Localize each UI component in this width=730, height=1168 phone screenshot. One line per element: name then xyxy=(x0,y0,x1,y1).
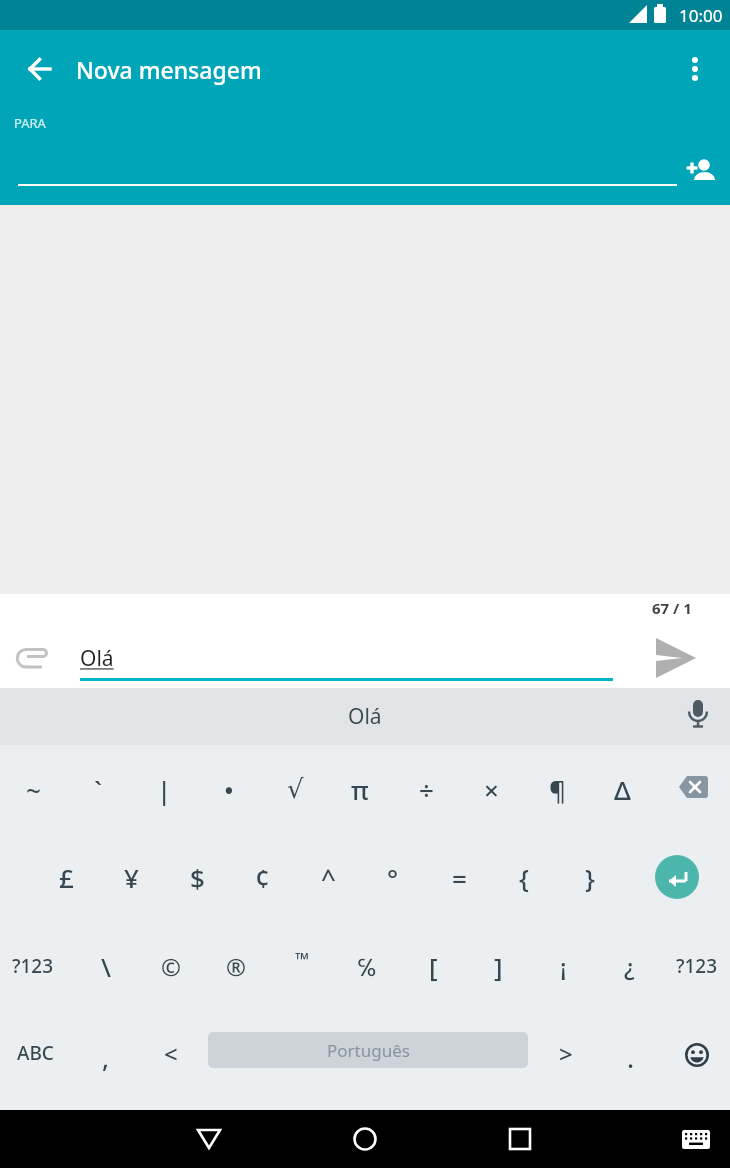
staticText: = xyxy=(452,860,467,895)
button[interactable] xyxy=(14,640,58,676)
button[interactable]: Δ xyxy=(590,748,654,830)
button[interactable] xyxy=(665,748,729,830)
button[interactable]: > xyxy=(534,1012,598,1094)
staticText: , xyxy=(102,1040,110,1075)
button[interactable]: © xyxy=(139,925,203,1007)
button[interactable] xyxy=(674,149,730,193)
button[interactable] xyxy=(16,45,64,93)
staticText: • xyxy=(224,772,234,807)
button[interactable] xyxy=(664,1012,728,1094)
button[interactable]: ÷ xyxy=(394,748,458,830)
staticText: ` xyxy=(94,772,102,807)
staticText: ℅ xyxy=(357,950,377,983)
button[interactable]: ?123 xyxy=(665,925,729,1007)
button[interactable] xyxy=(181,1111,237,1167)
button[interactable]: ?123 xyxy=(1,925,65,1007)
button[interactable]: . xyxy=(599,1016,663,1098)
staticText: Português xyxy=(327,1039,410,1062)
staticText: © xyxy=(161,950,181,983)
button[interactable] xyxy=(668,1111,724,1167)
button[interactable]: Olá xyxy=(348,702,382,731)
button[interactable]: ¿ xyxy=(597,925,661,1007)
button[interactable]: $ xyxy=(165,836,229,918)
button[interactable]: ~ xyxy=(1,748,65,830)
staticText: ¶ xyxy=(549,772,566,807)
staticText: ¢ xyxy=(255,860,270,895)
button[interactable]: ¶ xyxy=(525,748,589,830)
staticText: . xyxy=(627,1040,635,1075)
button[interactable]: < xyxy=(139,1012,203,1094)
button[interactable]: £ xyxy=(34,836,98,918)
button[interactable]: ¡ xyxy=(531,925,595,1007)
staticText: ™ xyxy=(295,947,309,972)
staticText: √ xyxy=(287,774,304,804)
button[interactable]: ABC xyxy=(3,1012,67,1094)
staticText: £ xyxy=(59,860,74,895)
button[interactable] xyxy=(337,1111,393,1167)
button[interactable]: √ xyxy=(263,748,327,830)
button[interactable]: = xyxy=(427,836,491,918)
button[interactable]: ¢ xyxy=(230,836,294,918)
staticText: [ xyxy=(429,949,438,984)
staticText: ® xyxy=(226,950,246,983)
button[interactable] xyxy=(492,1111,548,1167)
button[interactable]: } xyxy=(558,836,622,918)
button[interactable] xyxy=(645,836,709,918)
staticText: ~ xyxy=(26,772,41,807)
button[interactable]: [ xyxy=(401,925,465,1007)
button[interactable]: ¥ xyxy=(99,836,163,918)
button[interactable] xyxy=(650,632,702,684)
button[interactable]: { xyxy=(492,836,556,918)
staticText: \ xyxy=(101,949,112,984)
staticText: $ xyxy=(190,860,205,895)
button[interactable] xyxy=(671,45,719,93)
staticText: ¥ xyxy=(124,860,139,895)
staticText: ] xyxy=(494,949,503,984)
staticText: Olá xyxy=(348,702,382,731)
button[interactable]: | xyxy=(132,748,196,830)
button[interactable]: ^ xyxy=(296,836,360,918)
button[interactable]: ® xyxy=(204,925,268,1007)
staticText: ?123 xyxy=(676,953,718,979)
staticText: > xyxy=(559,1037,573,1070)
staticText: Δ xyxy=(614,772,631,807)
staticText: | xyxy=(157,772,172,807)
button[interactable]: ] xyxy=(466,925,530,1007)
staticText: ¡ xyxy=(560,950,567,983)
staticText: { xyxy=(519,860,529,895)
button[interactable]: ` xyxy=(66,748,130,830)
staticText: π xyxy=(351,772,369,807)
staticText: ^ xyxy=(321,860,336,895)
staticText: ?123 xyxy=(12,953,54,979)
staticText: ÷ xyxy=(419,772,434,807)
button[interactable]: Português xyxy=(208,1032,528,1068)
button[interactable]: ° xyxy=(361,836,425,918)
button[interactable]: ℅ xyxy=(335,925,399,1007)
button[interactable]: × xyxy=(459,748,523,830)
button[interactable]: \ xyxy=(74,925,138,1007)
staticText: PARA xyxy=(14,114,46,132)
button[interactable] xyxy=(676,692,720,740)
staticText: 67 / 1 xyxy=(652,598,692,618)
staticText: < xyxy=(164,1037,178,1070)
button[interactable]: , xyxy=(74,1016,138,1098)
staticText: } xyxy=(585,860,595,895)
button[interactable]: π xyxy=(328,748,392,830)
staticText: ° xyxy=(387,860,399,895)
staticText: × xyxy=(484,772,499,807)
staticText: 10:00 xyxy=(679,4,723,27)
staticText: ABC xyxy=(17,1040,54,1066)
button[interactable]: ™ xyxy=(270,918,334,1000)
staticText: Nova mensagem xyxy=(76,54,262,85)
button[interactable]: • xyxy=(197,748,261,830)
staticText: ¿ xyxy=(624,950,635,983)
staticText: Olá xyxy=(80,644,114,673)
